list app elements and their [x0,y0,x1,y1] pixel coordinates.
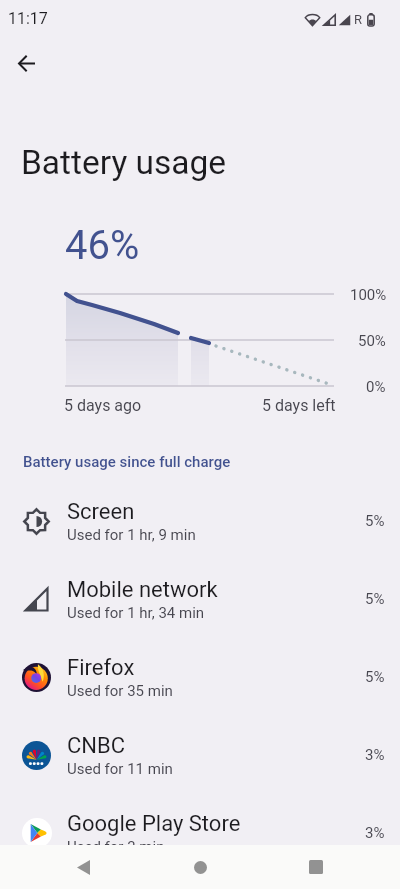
button[interactable]: Navigate up [6,43,46,83]
staticText: 5% [365,668,385,686]
button[interactable]: Back [51,845,116,889]
staticText: Used for 35 min [67,682,173,700]
button[interactable]: Google Play Store [0,794,400,872]
staticText: Firefox [67,655,135,681]
staticText: Google Play Store [67,811,241,837]
staticText: Used for 1 hr, 34 min [67,604,205,622]
staticText: Used for 1 hr, 9 min [67,526,196,544]
button[interactable]: Mobile network [0,560,400,638]
staticText: 50% [358,332,386,350]
button[interactable]: Home [167,845,233,889]
button[interactable]: Screen [0,482,400,560]
staticText: 3% [365,746,385,764]
staticText: Screen [67,499,135,525]
staticText: 5% [365,512,385,530]
staticText: 5 days ago [64,396,142,415]
staticText: CNBC [67,733,126,759]
staticText: 5 days left [262,396,336,415]
button[interactable]: CNBC [0,716,400,794]
staticText: R [354,12,363,27]
button[interactable]: Recent apps [283,845,349,889]
staticText: Battery usage [21,143,227,182]
staticText: Used for 3 min [67,838,165,856]
staticText: 3% [365,824,385,842]
staticText: 46% [65,222,140,269]
staticText: 100% [350,286,387,304]
staticText: 0% [366,378,386,396]
staticText: Battery usage since full charge [23,453,231,471]
staticText: 11:17 [8,9,48,28]
staticText: Used for 11 min [67,760,173,778]
staticText: Mobile network [67,577,218,603]
staticText: 5% [365,590,385,608]
button[interactable]: Firefox [0,638,400,716]
